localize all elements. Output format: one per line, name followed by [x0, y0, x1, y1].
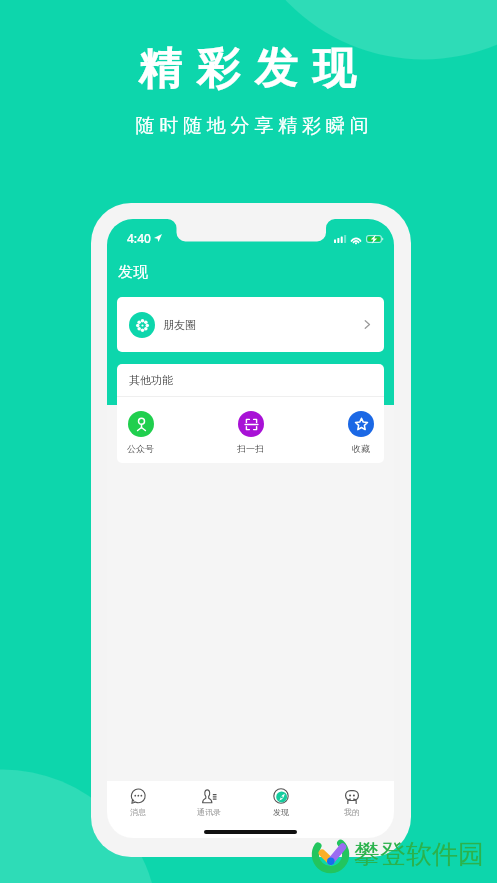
staticText: 公众号	[127, 443, 154, 454]
button[interactable]: 通讯录	[184, 788, 234, 817]
staticText: 精彩发现	[131, 42, 363, 96]
staticText: 4:40	[127, 230, 151, 246]
button[interactable]: 我的	[327, 788, 377, 817]
staticText: 攀登软件园	[354, 838, 484, 871]
staticText: 发现	[273, 807, 289, 817]
button[interactable]: 扫一扫	[227, 411, 274, 454]
staticText: 其他功能	[129, 373, 173, 387]
button[interactable]: 收藏	[337, 411, 384, 454]
staticText: 我的	[344, 807, 360, 817]
button[interactable]: 消息	[113, 788, 163, 817]
staticText: 朋友圈	[163, 318, 196, 332]
button[interactable]: 朋友圈	[117, 297, 384, 352]
staticText: 随时随地分享精彩瞬间	[133, 114, 371, 138]
staticText: 收藏	[352, 443, 370, 454]
button[interactable]: 公众号	[117, 411, 164, 454]
staticText: 发现	[118, 263, 148, 282]
button[interactable]: 发现	[256, 788, 306, 817]
staticText: 扫一扫	[237, 443, 264, 454]
staticText: 消息	[130, 807, 146, 817]
staticText: 通讯录	[197, 807, 221, 817]
